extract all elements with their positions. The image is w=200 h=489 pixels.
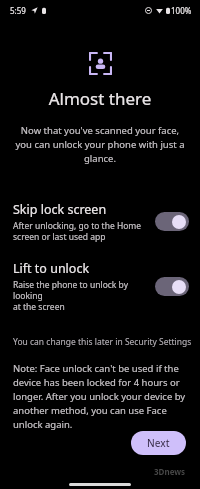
staticText: 100% (171, 5, 192, 16)
staticText: Lift to unlock (13, 260, 90, 277)
staticText: After unlocking, go to the Home screen o… (13, 220, 142, 242)
staticText: Raise the phone to unlock by looking at … (13, 279, 149, 312)
button[interactable]: Skip lock screen (155, 212, 189, 231)
staticText: Almost there (0, 87, 200, 110)
staticText: 3Dnews (154, 466, 186, 477)
button[interactable]: Next (131, 431, 186, 455)
button[interactable]: Lift to unlock (155, 277, 189, 296)
staticText: You can change this later in Security Se… (13, 336, 192, 348)
button[interactable]: Lift to unlock (0, 258, 200, 314)
staticText: Next (147, 436, 170, 450)
staticText: Now that you've scanned your face, you c… (12, 124, 188, 165)
staticText: Skip lock screen (13, 201, 107, 218)
staticText: Note: Face unlock can't be used if the d… (13, 362, 187, 431)
button[interactable]: Skip lock screen (0, 199, 200, 244)
staticText: 5:59 (10, 5, 26, 16)
